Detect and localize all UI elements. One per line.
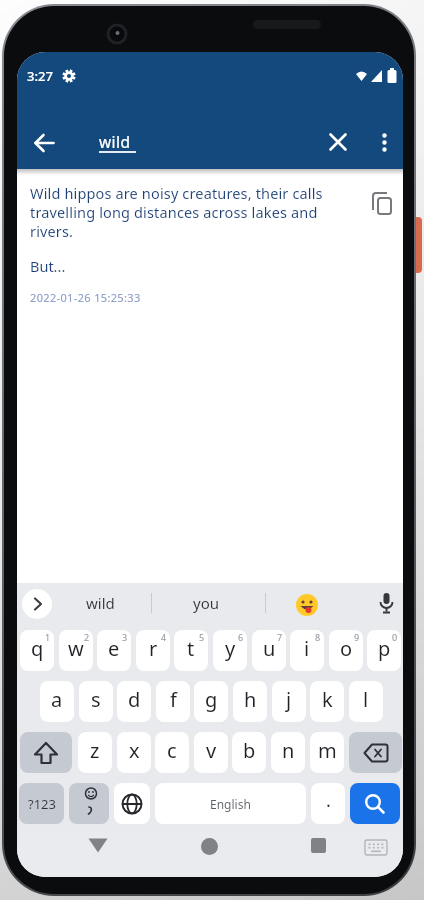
staticText: w <box>68 635 84 662</box>
button[interactable]: a <box>40 681 74 722</box>
button[interactable]: ?123 <box>19 783 64 824</box>
button[interactable]: wild <box>97 126 237 162</box>
staticText: v <box>206 737 217 764</box>
staticText: Wild hippos are noisy creatures, their c… <box>30 183 323 242</box>
staticText: q <box>31 635 44 662</box>
button[interactable]: k <box>310 681 344 722</box>
staticText: 0 <box>392 631 398 643</box>
staticText: l <box>363 686 369 713</box>
button[interactable]: i <box>290 630 324 671</box>
staticText: wild <box>99 131 131 152</box>
staticText: ?123 <box>28 795 56 813</box>
staticText: h <box>244 686 257 713</box>
staticText: f <box>170 686 177 713</box>
button[interactable] <box>318 122 358 162</box>
button[interactable]: q <box>20 630 54 671</box>
button[interactable]: f <box>156 681 190 722</box>
button[interactable]: wild <box>67 589 133 617</box>
staticText: c <box>167 737 177 764</box>
button[interactable] <box>371 122 399 162</box>
button[interactable]: v <box>194 732 228 773</box>
staticText: 3:27 <box>27 67 53 85</box>
staticText: . <box>326 788 331 813</box>
button[interactable] <box>311 838 326 853</box>
button[interactable]: o <box>329 630 363 671</box>
button[interactable]: l <box>349 681 383 722</box>
staticText: o <box>340 635 353 662</box>
button[interactable]: u <box>252 630 286 671</box>
staticText: x <box>129 737 140 764</box>
staticText: 3 <box>122 631 128 643</box>
button[interactable]: b <box>232 732 266 773</box>
button[interactable] <box>88 838 108 853</box>
button[interactable] <box>365 840 387 855</box>
staticText: 1 <box>45 631 51 643</box>
button[interactable] <box>350 783 400 824</box>
staticText: wild <box>86 593 115 613</box>
staticText: 8 <box>315 631 321 643</box>
staticText: 9 <box>354 631 360 643</box>
button[interactable]: m <box>310 732 344 773</box>
staticText: you <box>193 593 219 613</box>
button[interactable] <box>349 732 402 773</box>
button[interactable]: d <box>117 681 151 722</box>
button[interactable] <box>69 783 109 824</box>
staticText: But... <box>30 256 66 276</box>
staticText: u <box>263 635 276 662</box>
staticText: y <box>225 635 236 662</box>
staticText: b <box>243 737 256 764</box>
staticText: 7 <box>277 631 283 643</box>
staticText: d <box>128 686 141 713</box>
staticText: r <box>149 635 158 662</box>
staticText: a <box>51 686 63 713</box>
button[interactable]: j <box>272 681 306 722</box>
button[interactable]: n <box>271 732 305 773</box>
staticText: English <box>210 796 251 812</box>
button[interactable]: z <box>78 732 112 773</box>
button[interactable]: c <box>155 732 189 773</box>
button[interactable]: e <box>97 630 131 671</box>
staticText: s <box>91 686 101 713</box>
staticText: 2 <box>84 631 90 643</box>
staticText: 6 <box>238 631 244 643</box>
button[interactable] <box>22 589 52 619</box>
button[interactable] <box>20 732 72 773</box>
staticText: p <box>378 635 391 662</box>
staticText: z <box>90 737 100 764</box>
button[interactable] <box>370 190 398 220</box>
staticText: n <box>282 737 295 764</box>
button[interactable]: x <box>117 732 151 773</box>
staticText: i <box>304 635 310 662</box>
button[interactable] <box>201 838 218 855</box>
button[interactable]: r <box>136 630 170 671</box>
button[interactable]: . <box>311 783 345 824</box>
button[interactable]: you <box>173 589 239 617</box>
staticText: t <box>187 635 195 662</box>
button[interactable]: w <box>59 630 93 671</box>
staticText: m <box>318 737 337 764</box>
staticText: 5 <box>199 631 205 643</box>
button[interactable]: g <box>194 681 228 722</box>
staticText: 2022-01-26 15:25:33 <box>30 290 141 305</box>
button[interactable]: h <box>233 681 267 722</box>
staticText: j <box>286 686 292 713</box>
button[interactable]: t <box>174 630 208 671</box>
button[interactable] <box>27 123 67 163</box>
button[interactable] <box>296 594 318 616</box>
staticText: e <box>108 635 120 662</box>
button[interactable] <box>114 783 150 824</box>
staticText: 4 <box>161 631 167 643</box>
button[interactable]: s <box>79 681 113 722</box>
staticText: g <box>205 686 218 713</box>
button[interactable]: p <box>367 630 401 671</box>
button[interactable] <box>379 593 394 615</box>
button[interactable]: y <box>213 630 247 671</box>
button[interactable]: English <box>155 783 306 824</box>
staticText: k <box>322 686 333 713</box>
